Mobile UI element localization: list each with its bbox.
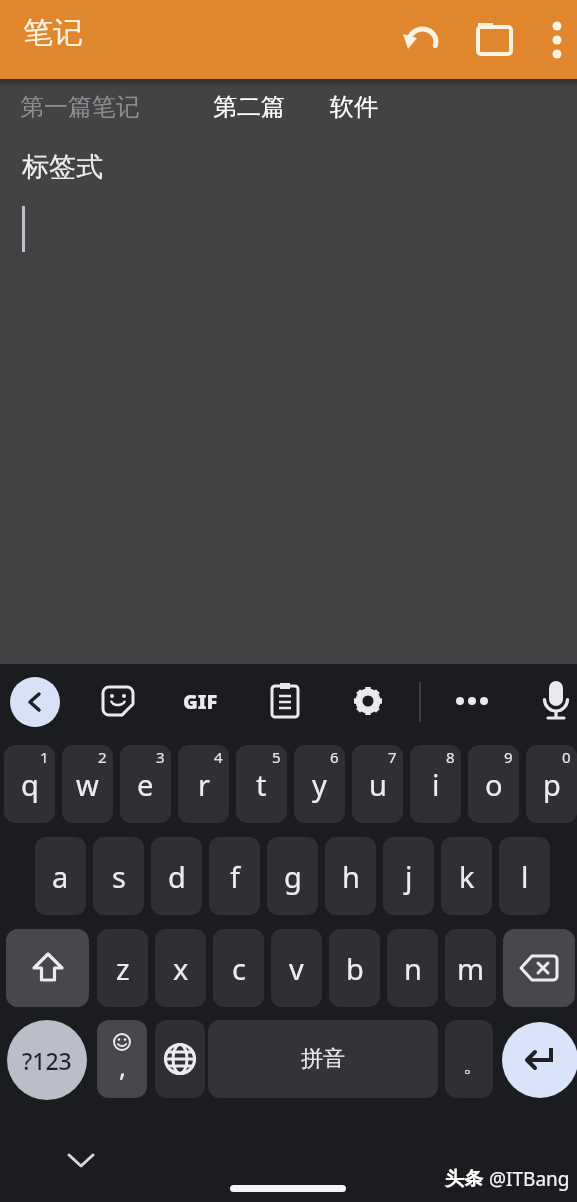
button[interactable]: y [294,745,345,823]
button[interactable] [540,679,572,723]
button[interactable]: p [526,745,577,823]
staticText: j [405,857,413,896]
staticText: @ITBang [489,1166,570,1192]
staticText: n [404,949,422,988]
staticText: x [173,949,189,988]
staticText: t [256,765,267,804]
staticText: 头条 [445,1167,483,1191]
staticText: 9 [504,747,513,767]
staticText: g [284,857,302,896]
staticText: 8 [446,747,455,767]
button[interactable] [448,683,496,719]
button[interactable]: 拼音 [208,1020,438,1098]
button[interactable] [6,929,89,1007]
staticText: e [137,765,154,804]
button[interactable]: 第二篇 [213,92,285,122]
staticText: 。 [463,1053,483,1078]
staticText: i [432,765,440,804]
button[interactable]: q [4,745,55,823]
staticText: o [485,765,503,804]
button[interactable] [268,682,302,720]
staticText: q [21,765,39,804]
button[interactable]: h [325,837,376,915]
button[interactable]: k [441,837,492,915]
staticText: 标签式 [22,150,103,184]
button[interactable] [540,14,574,66]
button[interactable]: e [120,745,171,823]
staticText: 1 [40,747,49,767]
staticText: 5 [272,747,281,767]
staticText: v [289,949,304,988]
button[interactable] [503,929,575,1007]
button[interactable]: a [35,837,86,915]
button[interactable]: d [151,837,202,915]
button[interactable] [155,1020,205,1098]
staticText: 3 [156,747,165,767]
button[interactable]: , [97,1020,147,1098]
button[interactable]: x [155,929,206,1007]
button[interactable]: 第一篇笔记 [20,92,140,122]
button[interactable]: w [62,745,113,823]
button[interactable]: j [383,837,434,915]
button[interactable]: i [410,745,461,823]
staticText: l [521,857,529,896]
button[interactable]: t [236,745,287,823]
button[interactable]: 。 [445,1020,493,1098]
button[interactable]: ?123 [7,1020,87,1100]
button[interactable]: GIF [176,686,224,716]
staticText: 2 [98,747,107,767]
button[interactable] [10,677,60,727]
button[interactable]: f [209,837,260,915]
button[interactable]: b [329,929,380,1007]
button[interactable] [502,1022,577,1098]
button[interactable] [350,683,386,719]
staticText: b [346,949,364,988]
staticText: y [312,765,327,804]
button[interactable]: r [178,745,229,823]
staticText: a [52,857,69,896]
staticText: r [198,765,210,804]
button[interactable]: v [271,929,322,1007]
button[interactable]: u [352,745,403,823]
staticText: GIF [183,688,218,715]
staticText: , [119,1049,126,1084]
button[interactable]: z [97,929,148,1007]
staticText: u [369,765,387,804]
button[interactable] [100,683,136,719]
button[interactable]: o [468,745,519,823]
staticText: 7 [388,747,397,767]
staticText: ?123 [22,1045,72,1076]
staticText: 6 [330,747,339,767]
staticText: 拼音 [301,1045,345,1073]
button[interactable]: m [445,929,496,1007]
button[interactable] [400,18,444,62]
staticText: f [230,857,240,896]
staticText: 4 [214,747,223,767]
button[interactable]: n [387,929,438,1007]
button[interactable]: 软件 [330,92,378,122]
staticText: c [232,949,246,988]
staticText: k [459,857,475,896]
button[interactable] [60,1146,102,1176]
staticText: w [76,765,99,804]
button[interactable]: s [93,837,144,915]
staticText: d [168,857,186,896]
button[interactable]: g [267,837,318,915]
staticText: 笔记 [23,14,83,52]
staticText: m [457,949,485,988]
button[interactable]: l [499,837,550,915]
staticText: 0 [562,747,571,767]
staticText: p [543,765,561,804]
staticText: z [116,949,130,988]
button[interactable]: c [213,929,264,1007]
button[interactable] [475,20,515,60]
staticText: s [112,857,126,896]
staticText: h [342,857,360,896]
